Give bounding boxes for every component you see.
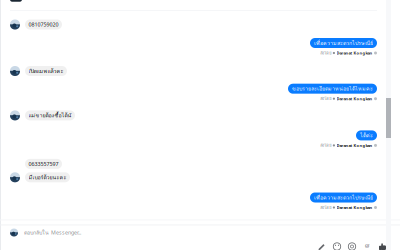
staticText: Daranat Kongkan — [336, 96, 372, 101]
staticText: ขอบรายละเอียดมาหน่อยได้ไหมคะ — [292, 85, 373, 93]
button[interactable]: ขอบรายละเอียดมาหน่อยได้ไหมคะ — [10, 84, 377, 101]
button[interactable]: มีเบอร์ด้วยนะคะ — [10, 172, 377, 182]
staticText: เพื่อความสะดวกไปรษณีย์ — [314, 193, 373, 202]
staticText: GIF — [365, 245, 369, 248]
staticText: ส่งโดย — [320, 142, 331, 148]
staticText: Daranat Kongkan — [336, 205, 372, 210]
button[interactable]: เพื่อความสะดวกไปรษณีย์ — [10, 38, 377, 55]
staticText: ส่งโดย — [320, 50, 331, 56]
staticText: Daranat Kongkan — [336, 50, 372, 56]
button[interactable]: เปิดแมพแล้วคะ — [10, 66, 377, 76]
button[interactable]: 0633557597 — [10, 159, 377, 169]
button[interactable]: GIF — [363, 242, 371, 250]
staticText: ส่งโดย — [320, 96, 331, 102]
staticText: เพื่อความสะดวกไปรษณีย์ — [314, 39, 373, 47]
button[interactable]: Write — [318, 242, 326, 250]
button[interactable]: แม่ขายต้องซื้อได้นั — [10, 110, 377, 120]
button[interactable]: ตอบกลับใน Messenger... — [0, 227, 400, 237]
button[interactable]: Like — [378, 242, 387, 250]
button[interactable]: 0810759020 — [10, 19, 377, 29]
staticText: 0810759020 — [28, 21, 58, 28]
button[interactable]: Camera — [348, 242, 356, 250]
staticText: ส่งโดย — [320, 204, 331, 211]
staticText: Daranat Kongkan — [336, 143, 372, 148]
staticText: แม่ขายต้องซื้อได้นั — [28, 111, 71, 120]
button[interactable]: Emoji — [333, 242, 341, 250]
staticText: ได้ค่ะ — [360, 131, 373, 140]
staticText: ตอบกลับใน Messenger... — [24, 228, 81, 237]
button[interactable]: ได้ค่ะ — [10, 130, 377, 148]
button[interactable]: เพื่อความสะดวกไปรษณีย์ — [10, 192, 377, 210]
staticText: เปิดแมพแล้วคะ — [28, 67, 63, 75]
staticText: มีเบอร์ด้วยนะคะ — [28, 173, 66, 181]
staticText: 0633557597 — [28, 160, 58, 167]
